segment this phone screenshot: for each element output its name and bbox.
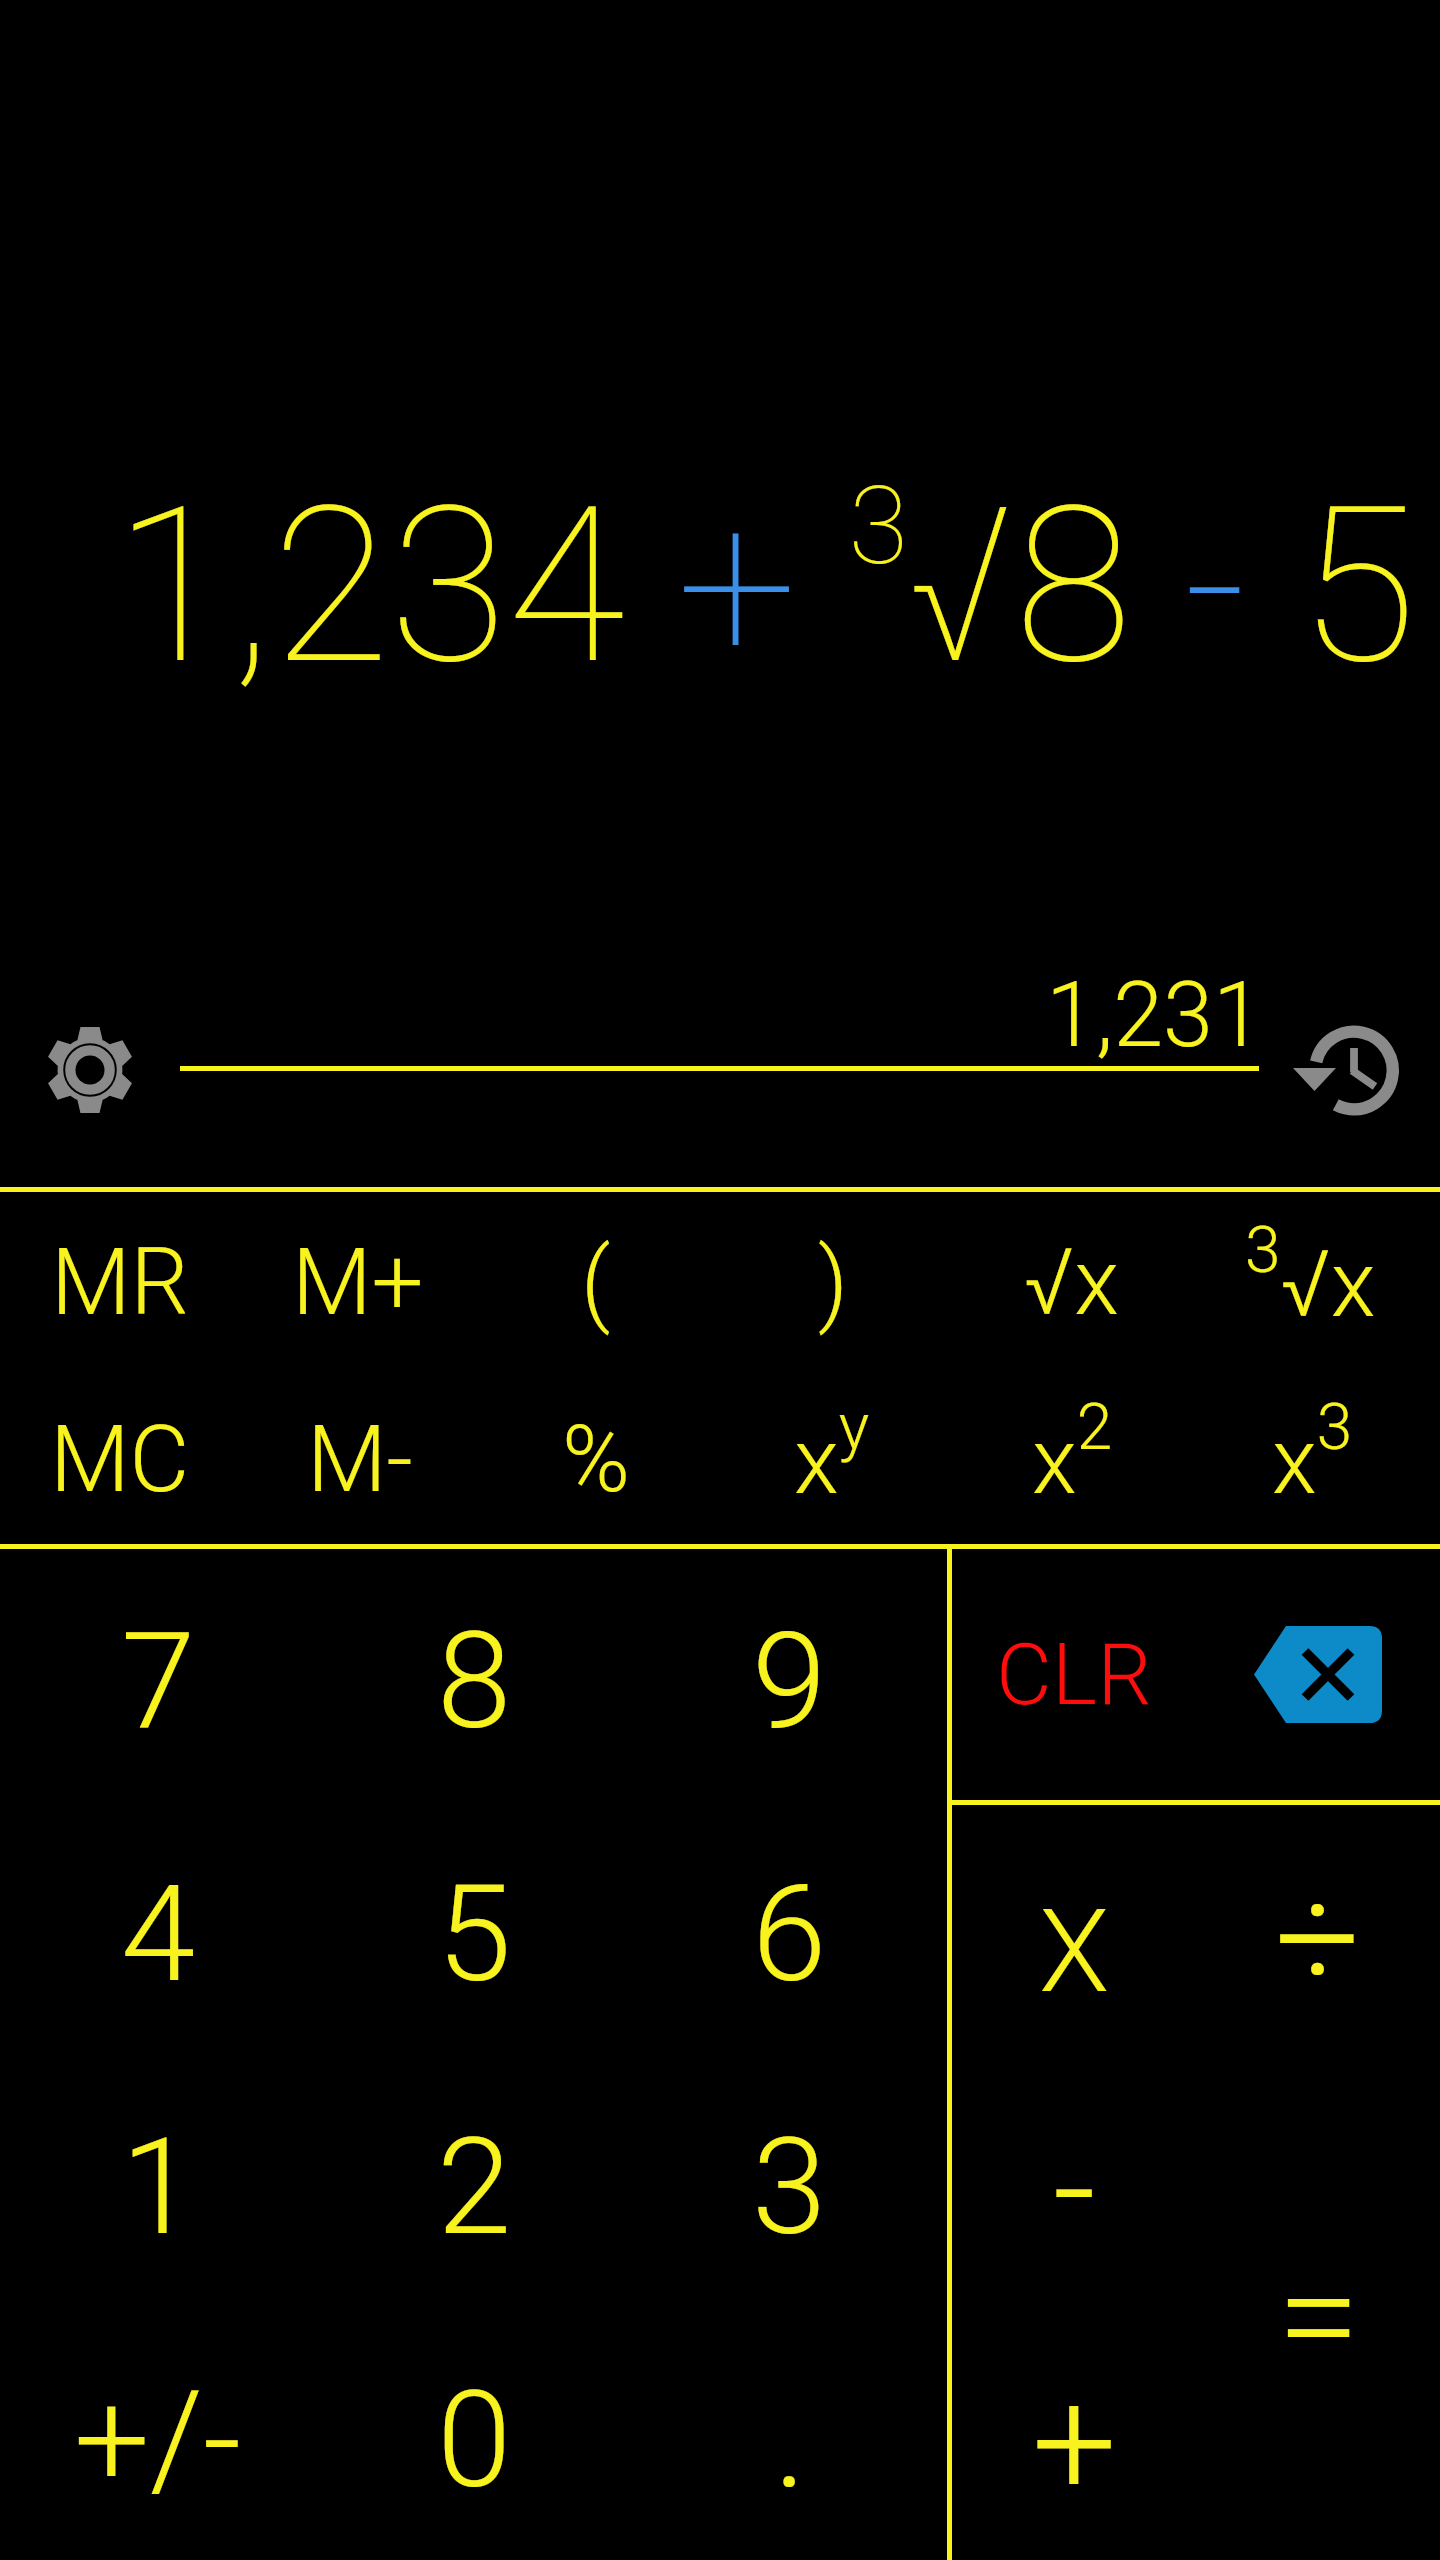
staticText: 3√x — [1245, 1213, 1376, 1338]
button[interactable]: √x — [960, 1191, 1200, 1368]
button[interactable]: % — [480, 1368, 720, 1545]
button[interactable]: Settings — [46, 1026, 134, 1114]
staticText: 1,234 + 3√8 - 5 — [114, 461, 1417, 713]
button[interactable]: 2 — [316, 2055, 632, 2308]
staticText: +/- — [74, 2362, 242, 2519]
button[interactable]: 6 — [632, 1802, 947, 2055]
button[interactable]: x3 — [1200, 1368, 1440, 1545]
staticText: √x — [1024, 1229, 1120, 1337]
button[interactable]: M- — [240, 1368, 480, 1545]
staticText: 7 — [121, 1603, 196, 1760]
button[interactable]: xy — [720, 1368, 960, 1545]
staticText: x2 — [1032, 1390, 1113, 1515]
button[interactable]: 3 — [632, 2055, 947, 2308]
button[interactable]: - — [952, 2056, 1196, 2308]
staticText: ) — [818, 1229, 849, 1337]
staticText: 1,231 — [1046, 963, 1263, 1068]
staticText: X — [1039, 1884, 1110, 2019]
staticText: MR — [51, 1229, 190, 1337]
staticText: 6 — [752, 1856, 827, 2013]
staticText: 4 — [121, 1856, 196, 2013]
button[interactable]: 8 — [316, 1549, 632, 1802]
staticText: ÷ — [1275, 1851, 1361, 2027]
staticText: + — [1032, 2356, 1117, 2532]
staticText: - — [1053, 2102, 1096, 2278]
button[interactable]: ) — [720, 1191, 960, 1368]
staticText: CLR — [996, 1624, 1152, 1725]
button[interactable]: MR — [0, 1191, 240, 1368]
staticText: 2 — [437, 2109, 512, 2266]
button[interactable]: MC — [0, 1368, 240, 1545]
staticText: . — [774, 2362, 806, 2519]
button[interactable]: ( — [480, 1191, 720, 1368]
button[interactable]: Backspace — [1196, 1549, 1440, 1800]
button[interactable]: History — [1291, 1023, 1399, 1119]
button[interactable]: 7 — [0, 1549, 316, 1802]
staticText: MC — [50, 1406, 190, 1514]
button[interactable]: X — [952, 1805, 1196, 2056]
staticText: 9 — [752, 1603, 827, 1760]
staticText: ( — [581, 1229, 611, 1337]
staticText: x3 — [1272, 1390, 1353, 1515]
staticText: xy — [794, 1390, 870, 1515]
button[interactable]: 3√x — [1200, 1191, 1440, 1368]
button[interactable]: 9 — [632, 1549, 947, 1802]
staticText: 1 — [121, 2109, 196, 2266]
staticText: M+ — [292, 1229, 424, 1337]
button[interactable]: 5 — [316, 1802, 632, 2055]
button[interactable]: 4 — [0, 1802, 316, 2055]
button[interactable]: . — [632, 2308, 947, 2560]
staticText: 3 — [752, 2109, 827, 2266]
button[interactable]: = — [1196, 2056, 1440, 2560]
button[interactable]: +/- — [0, 2308, 316, 2560]
staticText: 8 — [437, 1603, 512, 1760]
staticText: 5 — [437, 1856, 512, 2013]
button[interactable]: x2 — [960, 1368, 1200, 1545]
staticText: % — [562, 1406, 631, 1514]
staticText: M- — [307, 1406, 413, 1514]
staticText: = — [1277, 2229, 1360, 2405]
button[interactable]: CLR — [952, 1549, 1196, 1800]
button[interactable]: ÷ — [1196, 1805, 1440, 2056]
button[interactable]: M+ — [240, 1191, 480, 1368]
button[interactable]: 0 — [316, 2308, 632, 2560]
button[interactable]: 1 — [0, 2055, 316, 2308]
button[interactable]: + — [952, 2308, 1196, 2560]
staticText: 0 — [437, 2362, 512, 2519]
